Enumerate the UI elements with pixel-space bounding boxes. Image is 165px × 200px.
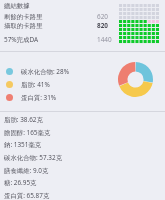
- button[interactable]: 鈉: 1351毫克: [0, 138, 165, 150]
- button[interactable]: 膳食纖維: 9.0克: [0, 164, 165, 176]
- staticText: 總結數據: [4, 2, 30, 10]
- button[interactable]: 糖: 26.95克: [0, 176, 165, 188]
- button[interactable]: 蛋白質: 31%: [6, 91, 57, 103]
- staticText: 蛋白質: 31%: [21, 93, 57, 102]
- button[interactable]: 脂肪: 41%: [6, 78, 50, 90]
- staticText: 鈉: 1351毫克: [4, 140, 42, 149]
- staticText: 剩餘的卡路里: [4, 13, 43, 21]
- staticText: 脂肪: 38.62克: [4, 115, 43, 124]
- button[interactable]: 攝取的卡路里: [4, 21, 161, 30]
- staticText: 1440: [97, 35, 112, 44]
- staticText: 蛋白質: 65.87克: [4, 191, 50, 200]
- button[interactable]: 碳水化合物: 28%: [6, 65, 69, 77]
- button[interactable]: 57%完成DA: [4, 35, 161, 44]
- staticText: 膽固醇: 165毫克: [4, 128, 51, 137]
- staticText: 620: [97, 12, 108, 21]
- button[interactable]: 膽固醇: 165毫克: [0, 126, 165, 138]
- staticText: 碳水化合物: 28%: [21, 67, 69, 76]
- button[interactable]: 脂肪: 38.62克: [0, 113, 165, 125]
- staticText: 碳水化合物: 57.32克: [4, 153, 63, 162]
- button[interactable]: 蛋白質: 65.87克: [0, 189, 165, 200]
- staticText: 糖: 26.95克: [4, 178, 37, 187]
- staticText: 膳食纖維: 9.0克: [4, 166, 49, 175]
- staticText: 攝取的卡路里: [4, 22, 43, 30]
- staticText: 57%完成DA: [4, 35, 39, 44]
- staticText: 脂肪: 41%: [21, 80, 50, 89]
- button[interactable]: 剩餘的卡路里: [4, 12, 161, 21]
- staticText: 820: [97, 21, 108, 30]
- button[interactable]: 碳水化合物: 57.32克: [0, 151, 165, 163]
